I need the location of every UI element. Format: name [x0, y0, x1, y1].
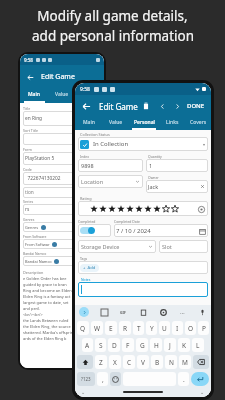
- staticText: the Elden Ring, the source: [23, 324, 71, 329]
- staticText: Notes: [81, 277, 91, 282]
- button[interactable]: Covers: [185, 117, 211, 130]
- staticText: ▾: [203, 142, 206, 147]
- staticText: rs: [25, 206, 30, 213]
- button[interactable]: L: [192, 338, 204, 352]
- button[interactable]: + Add: [86, 258, 96, 265]
- button[interactable]: Previous: [157, 101, 167, 111]
- button[interactable]: N: [165, 355, 177, 369]
- button[interactable]: Voice input: [197, 307, 207, 317]
- staticText: ards of the Elden Ring b: [23, 336, 67, 341]
- button[interactable]: G: [136, 338, 148, 352]
- button[interactable]: Clipboard: [138, 307, 148, 317]
- staticText: Index: [80, 154, 89, 159]
- staticText: .: [183, 375, 185, 384]
- button[interactable]: ,: [97, 372, 108, 386]
- button[interactable]: P: [198, 321, 209, 335]
- staticText: ⌄: [200, 389, 205, 395]
- button[interactable]: Delete: [140, 100, 152, 112]
- staticText: 9898: [81, 162, 94, 169]
- staticText: Value: [55, 91, 69, 98]
- staticText: Pe: [87, 91, 93, 98]
- button[interactable]: Shift: [77, 355, 93, 369]
- button[interactable]: DONE: [186, 102, 206, 110]
- staticText: e Golden Order has bee: [23, 276, 67, 281]
- staticText: Storage Device: [81, 243, 120, 250]
- button[interactable]: Q: [77, 321, 89, 335]
- button[interactable]: W: [91, 321, 103, 335]
- button[interactable]: More: [177, 307, 187, 317]
- button[interactable]: tion: [23, 187, 101, 198]
- staticText: Series: [23, 199, 34, 204]
- button[interactable]: R: [119, 321, 131, 335]
- button[interactable]: Pe: [76, 89, 104, 103]
- button[interactable]: T: [133, 321, 144, 335]
- button[interactable]: Storage Device: [81, 240, 153, 253]
- button[interactable]: Expand toolbar: [79, 307, 89, 317]
- staticText: 7 / 10 / 2024: [116, 227, 151, 235]
- button[interactable]: K: [178, 338, 190, 352]
- staticText: L: [196, 341, 200, 350]
- button[interactable]: Backspace: [193, 355, 209, 369]
- staticText: and peril.: [23, 306, 41, 311]
- staticText: R: [123, 324, 128, 333]
- staticText: Description: [23, 270, 44, 275]
- button[interactable]: Translate: [99, 307, 109, 317]
- button[interactable]: Links: [159, 117, 185, 130]
- button[interactable]: Y: [146, 321, 157, 335]
- button[interactable]: Back: [25, 72, 35, 82]
- button[interactable]: Clear: [199, 183, 206, 190]
- button[interactable]: A: [82, 338, 93, 352]
- button[interactable]: M: [179, 355, 191, 369]
- button[interactable]: X: [109, 355, 121, 369]
- button[interactable]: .: [178, 372, 189, 386]
- button[interactable]: Next: [172, 101, 182, 111]
- button[interactable]: I: [172, 321, 183, 335]
- staticText: T: [137, 324, 141, 333]
- button[interactable]: GIF: [118, 307, 128, 317]
- staticText: <br/><br/>: [23, 312, 43, 317]
- staticText: Completed: [78, 219, 96, 224]
- staticText: Jack: [148, 183, 159, 190]
- button[interactable]: Main: [75, 117, 102, 130]
- button[interactable]: Z: [95, 355, 107, 369]
- button[interactable]: Personal: [129, 117, 159, 130]
- button[interactable]: + Add: [86, 224, 96, 231]
- button[interactable]: Enter: [191, 372, 209, 386]
- button[interactable]: F: [122, 338, 134, 352]
- staticText: K: [182, 341, 187, 350]
- staticText: A: [85, 341, 90, 350]
- staticText: Bandai Namco: [23, 251, 47, 256]
- button[interactable]: Value: [48, 89, 76, 103]
- button[interactable]: + Add: [83, 264, 96, 272]
- button[interactable]: Back: [80, 100, 92, 112]
- staticText: G: [140, 341, 145, 350]
- button[interactable]: B: [151, 355, 163, 369]
- button[interactable]: Main: [20, 89, 48, 103]
- button[interactable]: [80, 227, 95, 234]
- button[interactable]: + Add: [86, 241, 96, 248]
- button[interactable]: In Collection: [80, 137, 206, 151]
- button[interactable]: Emoji: [110, 372, 121, 386]
- button[interactable]: C: [123, 355, 135, 369]
- staticText: + Add: [86, 259, 96, 264]
- button[interactable]: Settings: [158, 307, 168, 317]
- button[interactable]: U: [159, 321, 170, 335]
- button[interactable]: Clear rating: [197, 205, 205, 213]
- button[interactable]: Location: [81, 175, 140, 188]
- button[interactable]: E: [105, 321, 117, 335]
- button[interactable]: Pick date: [198, 227, 206, 235]
- button[interactable]: V: [137, 355, 149, 369]
- staticText: Personal: [134, 119, 155, 126]
- button[interactable]: Value: [102, 117, 129, 130]
- button[interactable]: J: [164, 338, 176, 352]
- staticText: H: [154, 341, 159, 350]
- button[interactable]: D: [108, 338, 120, 352]
- button[interactable]: S: [95, 338, 106, 352]
- button[interactable]: O: [185, 321, 196, 335]
- staticText: add personal information: [32, 27, 194, 45]
- button[interactable]: ⌄: [81, 389, 86, 395]
- staticText: O: [188, 324, 194, 333]
- button[interactable]: ?123: [77, 372, 95, 386]
- button[interactable]: H: [150, 338, 162, 352]
